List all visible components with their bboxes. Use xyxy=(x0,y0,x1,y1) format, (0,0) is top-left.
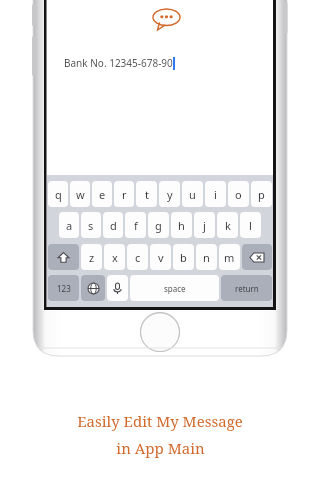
button[interactable]: 123 xyxy=(48,275,79,301)
button[interactable]: f xyxy=(125,212,146,238)
staticText: b xyxy=(180,250,187,265)
staticText: h xyxy=(178,218,185,233)
other: Delete xyxy=(249,252,265,263)
button[interactable]: space xyxy=(130,275,219,301)
button[interactable]: Shift xyxy=(48,244,79,270)
staticText: u xyxy=(189,187,196,202)
button[interactable]: p xyxy=(251,181,272,207)
button[interactable]: e xyxy=(92,181,112,207)
other: Shift xyxy=(57,251,70,264)
staticText: o xyxy=(235,187,242,202)
button[interactable]: w xyxy=(70,181,90,207)
button[interactable]: t xyxy=(136,181,157,207)
button[interactable]: Change keyboard xyxy=(81,275,105,301)
button[interactable]: n xyxy=(196,244,217,270)
staticText: r xyxy=(122,187,127,202)
button[interactable]: v xyxy=(150,244,171,270)
staticText: s xyxy=(88,218,94,233)
button[interactable]: c xyxy=(127,244,148,270)
button[interactable]: s xyxy=(81,212,101,238)
button[interactable]: m xyxy=(219,244,240,270)
button[interactable]: Dictate xyxy=(107,275,128,301)
button[interactable]: h xyxy=(171,212,192,238)
staticText: z xyxy=(89,250,95,265)
button[interactable]: q xyxy=(48,181,68,207)
button[interactable]: d xyxy=(103,212,123,238)
staticText: n xyxy=(203,250,210,265)
staticText: w xyxy=(76,187,85,202)
staticText: space xyxy=(164,283,186,294)
staticText: Easily Edit My Message xyxy=(77,411,243,431)
staticText: g xyxy=(155,218,162,233)
button[interactable]: l xyxy=(240,212,261,238)
button[interactable]: Message xyxy=(152,8,181,31)
staticText: y xyxy=(167,187,173,202)
staticText: k xyxy=(225,218,231,233)
staticText: a xyxy=(66,218,73,233)
button[interactable]: z xyxy=(81,244,102,270)
staticText: e xyxy=(99,187,106,202)
button[interactable]: o xyxy=(228,181,249,207)
button[interactable]: x xyxy=(104,244,125,270)
staticText: t xyxy=(145,187,149,202)
button[interactable]: g xyxy=(148,212,169,238)
button[interactable]: k xyxy=(217,212,238,238)
staticText: i xyxy=(214,187,217,202)
button[interactable]: r xyxy=(114,181,134,207)
staticText: 123 xyxy=(57,283,71,294)
button[interactable]: j xyxy=(194,212,215,238)
button[interactable]: i xyxy=(205,181,226,207)
other: Change keyboard xyxy=(87,282,100,295)
staticText: l xyxy=(249,218,252,233)
staticText: q xyxy=(55,187,62,202)
staticText: Bank No. 12345-678-90 xyxy=(64,56,173,70)
button[interactable]: u xyxy=(182,181,203,207)
staticText: f xyxy=(134,218,138,233)
button[interactable]: y xyxy=(159,181,180,207)
staticText: j xyxy=(203,218,206,233)
staticText: m xyxy=(224,250,235,265)
staticText: x xyxy=(112,250,118,265)
staticText: p xyxy=(258,187,265,202)
staticText: d xyxy=(110,218,117,233)
staticText: in App Main xyxy=(116,438,205,458)
button[interactable]: Delete xyxy=(242,244,272,270)
staticText: return xyxy=(235,283,259,294)
staticText: v xyxy=(158,250,164,265)
button[interactable]: b xyxy=(173,244,194,270)
button[interactable]: a xyxy=(59,212,79,238)
staticText: c xyxy=(135,250,141,265)
button[interactable]: return xyxy=(221,275,272,301)
other: Dictate xyxy=(113,282,122,295)
